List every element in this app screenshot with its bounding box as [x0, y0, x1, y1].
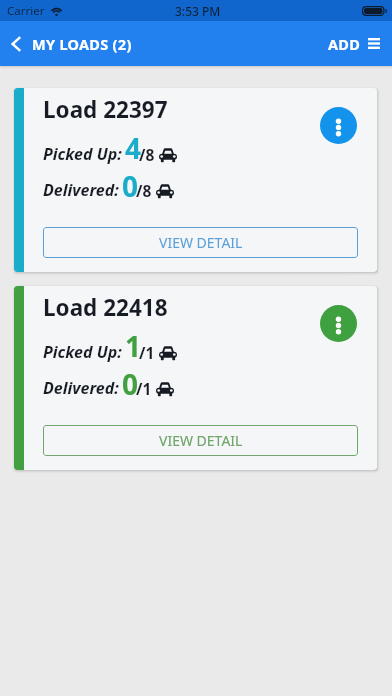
- staticText: Delivered:: [43, 377, 119, 399]
- staticText: Picked Up:: [43, 341, 122, 363]
- staticText: 0: [122, 365, 139, 401]
- staticText: /8: [136, 180, 152, 201]
- staticText: VIEW DETAIL: [159, 233, 243, 252]
- button[interactable]: Load 22397: [14, 88, 377, 272]
- button[interactable]: VIEW DETAIL: [43, 227, 358, 258]
- button[interactable]: More options: [320, 107, 357, 144]
- staticText: Load 22418: [43, 292, 168, 323]
- button[interactable]: Load 22418: [14, 286, 377, 470]
- staticText: /1: [139, 342, 155, 363]
- button[interactable]: ADD: [316, 21, 361, 66]
- staticText: 3:53 PM: [175, 3, 221, 19]
- staticText: Delivered:: [43, 179, 119, 201]
- staticText: /8: [139, 144, 155, 165]
- button[interactable]: VIEW DETAIL: [43, 425, 358, 456]
- staticText: ADD: [328, 34, 361, 54]
- button[interactable]: Back: [0, 21, 32, 66]
- button[interactable]: More options: [320, 305, 357, 342]
- staticText: MY LOADS (2): [32, 34, 132, 54]
- staticText: Load 22397: [43, 94, 168, 125]
- staticText: VIEW DETAIL: [159, 431, 243, 450]
- button[interactable]: Menu: [361, 21, 392, 66]
- staticText: 0: [122, 167, 139, 203]
- staticText: Carrier: [7, 3, 45, 19]
- staticText: /1: [136, 378, 152, 399]
- staticText: 1: [125, 327, 142, 365]
- staticText: 4: [125, 129, 142, 167]
- staticText: Picked Up:: [43, 143, 122, 165]
